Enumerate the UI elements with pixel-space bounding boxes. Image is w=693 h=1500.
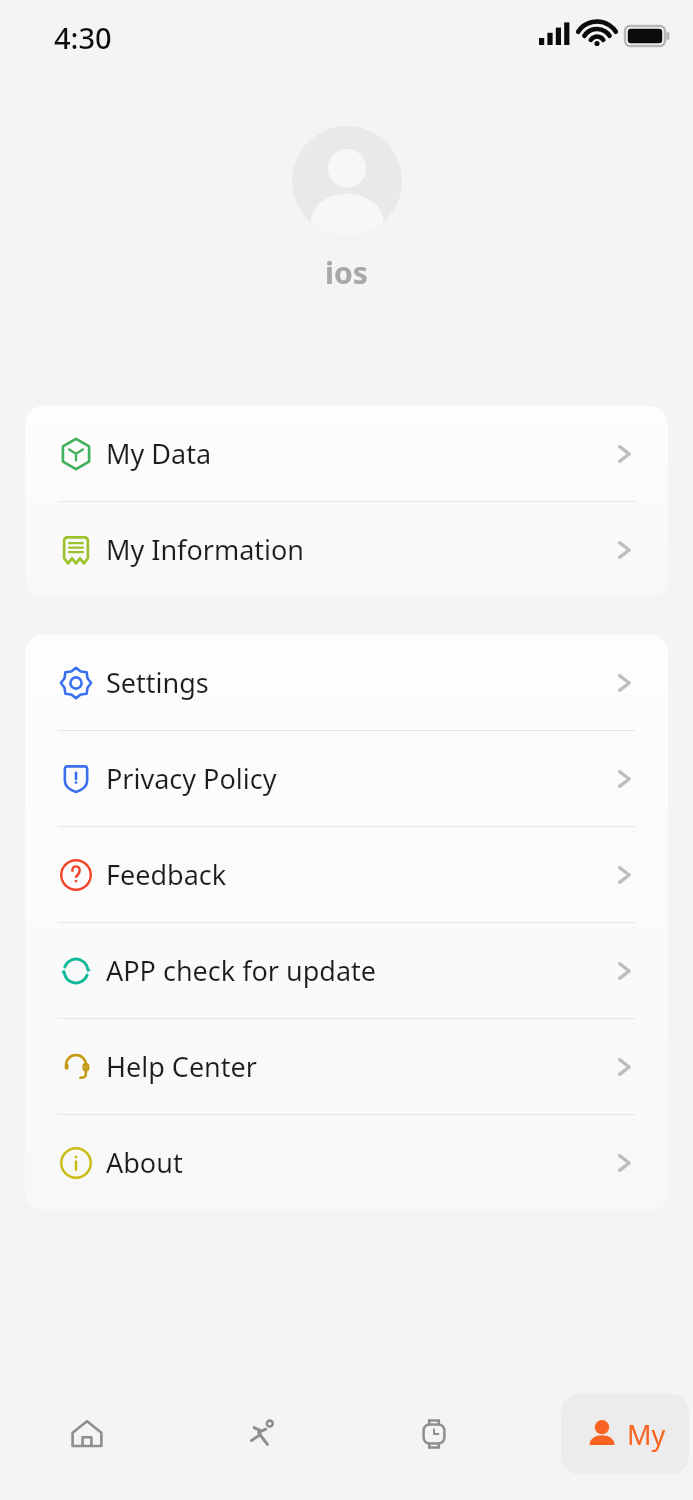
button[interactable]: Settings bbox=[25, 635, 668, 730]
staticText: My Data bbox=[106, 435, 212, 472]
button[interactable]: Help Center bbox=[25, 1019, 668, 1114]
button[interactable]: My Data bbox=[25, 406, 668, 501]
staticText: My Information bbox=[106, 531, 305, 568]
button[interactable]: Device bbox=[347, 1368, 520, 1500]
staticText: Help Center bbox=[106, 1048, 257, 1085]
button[interactable]: APP check for update bbox=[25, 923, 668, 1018]
button[interactable]: Feedback bbox=[25, 827, 668, 922]
button[interactable]: Activity bbox=[174, 1368, 347, 1500]
staticText: APP check for update bbox=[106, 952, 377, 989]
staticText: About bbox=[106, 1144, 183, 1181]
staticText: 4:30 bbox=[54, 18, 112, 57]
button[interactable]: My bbox=[561, 1394, 689, 1474]
staticText: ios bbox=[325, 252, 368, 293]
button[interactable]: My Information bbox=[25, 502, 668, 597]
button[interactable]: Privacy Policy bbox=[25, 731, 668, 826]
staticText: Feedback bbox=[106, 856, 227, 893]
staticText: Settings bbox=[106, 664, 209, 701]
staticText: My bbox=[627, 1416, 666, 1453]
button[interactable]: About bbox=[25, 1115, 668, 1210]
button[interactable]: Home bbox=[0, 1368, 174, 1500]
staticText: Privacy Policy bbox=[106, 760, 277, 797]
button[interactable]: Profile avatar bbox=[292, 126, 402, 236]
